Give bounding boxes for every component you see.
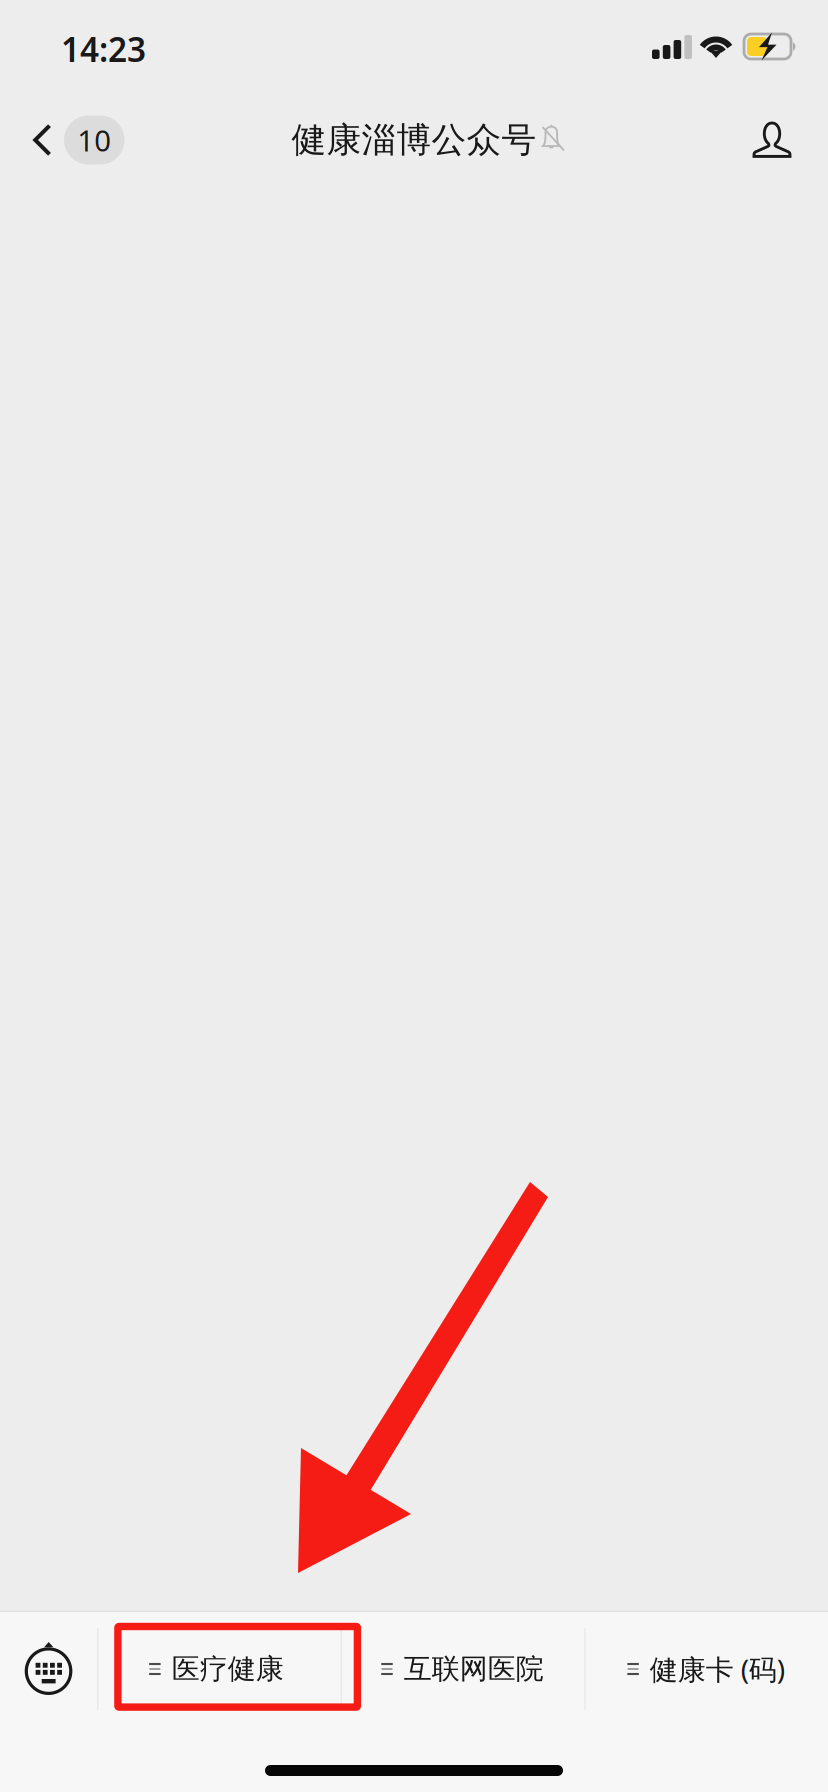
button[interactable]: 医疗健康 xyxy=(97,1619,341,1719)
staticText: 健康淄博公众号 xyxy=(291,119,536,161)
button[interactable]: Official account profile xyxy=(727,109,828,171)
staticText: 健康卡 (码) xyxy=(650,1650,785,1688)
staticText: 医疗健康 xyxy=(172,1652,284,1686)
button[interactable]: 健康卡 (码) xyxy=(584,1619,828,1719)
staticText: 互联网医院 xyxy=(404,1652,544,1686)
staticText: 10 xyxy=(77,120,111,159)
button[interactable]: 互联网医院 xyxy=(341,1619,584,1719)
staticText: 14:23 xyxy=(61,27,146,71)
button[interactable]: Show keyboard xyxy=(0,1619,97,1719)
button[interactable]: Back, 10 unread chats xyxy=(0,103,140,176)
